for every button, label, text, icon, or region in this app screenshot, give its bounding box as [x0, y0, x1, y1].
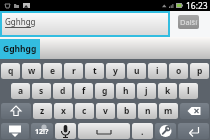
button[interactable]: n [138, 103, 157, 119]
button[interactable]: Backspace [180, 103, 209, 119]
staticText: p [197, 65, 203, 77]
button[interactable]: b [117, 103, 136, 119]
button[interactable]: Gghhgg [2, 13, 168, 35]
button[interactable]: g [95, 83, 114, 99]
button[interactable]: Settings [155, 123, 176, 139]
button[interactable]: Gghhgg [0, 39, 40, 59]
staticText: z [40, 105, 45, 117]
button[interactable]: Hide keyboard [1, 123, 29, 139]
button[interactable]: w [22, 63, 41, 79]
staticText: r [72, 65, 76, 77]
staticText: Gghhgg [5, 16, 36, 27]
button[interactable]: Mic [55, 123, 76, 139]
button[interactable]: u [127, 63, 146, 79]
staticText: s [39, 85, 44, 97]
button[interactable]: s [32, 83, 51, 99]
staticText: j [145, 85, 148, 97]
staticText: g [102, 85, 108, 97]
button[interactable]: m [159, 103, 178, 119]
staticText: d [60, 85, 66, 97]
button[interactable]: . [132, 123, 153, 139]
staticText: 12!? [35, 127, 49, 137]
staticText: o [176, 65, 182, 77]
button[interactable]: q [1, 63, 20, 79]
staticText: u [134, 65, 140, 77]
staticText: b [124, 105, 130, 117]
button[interactable]: r [64, 63, 83, 79]
button[interactable]: i [148, 63, 167, 79]
staticText: a [18, 85, 24, 97]
staticText: x [61, 105, 66, 117]
button[interactable]: t [85, 63, 104, 79]
staticText: k [165, 85, 171, 97]
staticText: w [28, 65, 36, 77]
button[interactable]: v [96, 103, 115, 119]
staticText: Další [180, 17, 198, 27]
staticText: c [82, 105, 87, 117]
button[interactable]: f [74, 83, 93, 99]
staticText: l [187, 85, 190, 97]
staticText: t [93, 65, 97, 77]
button[interactable]: d [53, 83, 72, 99]
staticText: i [156, 65, 159, 77]
button[interactable]: Další [178, 15, 199, 29]
button[interactable]: 12!? [31, 123, 53, 139]
button[interactable]: j [137, 83, 156, 99]
staticText: n [145, 105, 151, 117]
staticText: Gghhgg [3, 43, 37, 55]
button[interactable]: Space [78, 123, 130, 139]
staticText: 16:23 [186, 0, 208, 11]
button[interactable]: l [179, 83, 198, 99]
button[interactable]: h [116, 83, 135, 99]
button[interactable]: Shift [1, 103, 31, 119]
button[interactable]: a [11, 83, 30, 99]
staticText: v [103, 105, 108, 117]
staticText: e [50, 65, 56, 77]
staticText: q [8, 65, 14, 77]
button[interactable]: k [158, 83, 177, 99]
button[interactable]: e [43, 63, 62, 79]
staticText: m [164, 105, 173, 117]
button[interactable]: x [54, 103, 73, 119]
button[interactable]: c [75, 103, 94, 119]
button[interactable]: o [169, 63, 188, 79]
staticText: y [113, 65, 118, 77]
button[interactable]: y [106, 63, 125, 79]
button[interactable]: Enter [178, 123, 209, 139]
button[interactable]: p [190, 63, 209, 79]
button[interactable]: z [33, 103, 52, 119]
staticText: f [82, 85, 86, 97]
staticText: . [141, 125, 144, 137]
staticText: h [123, 85, 129, 97]
